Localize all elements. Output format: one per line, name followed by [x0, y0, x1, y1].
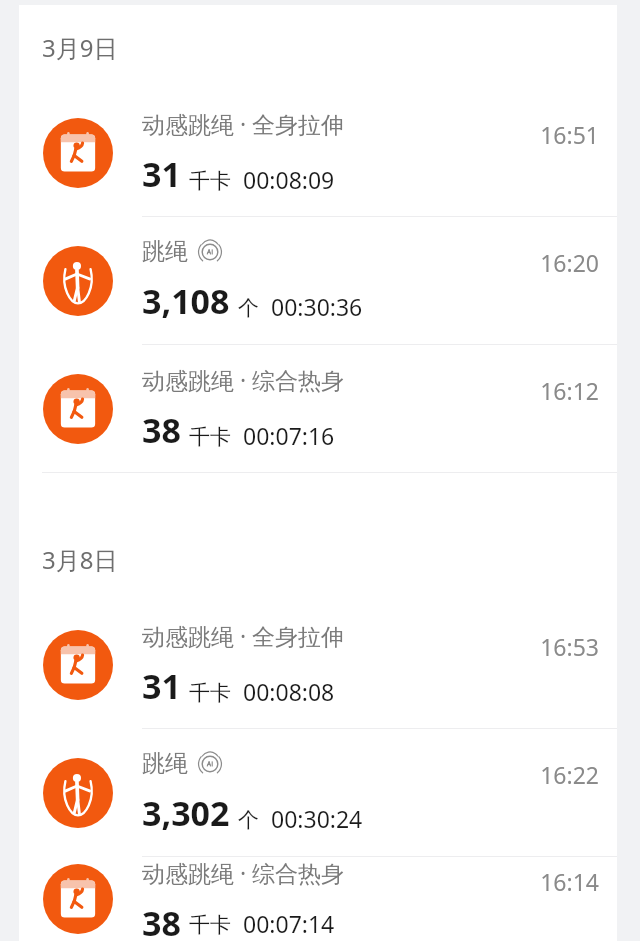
staticText: 动感跳绳 · 全身拉伸 [142, 620, 345, 651]
staticText: 3月8日 [42, 543, 118, 576]
staticText: 个 [238, 807, 259, 833]
staticText: 动感跳绳 · 全身拉伸 [142, 108, 345, 139]
button[interactable]: 动感跳绳 · 全身拉伸 [19, 601, 617, 728]
staticText: 个 [238, 295, 259, 321]
staticText: 16:51 [540, 119, 599, 150]
staticText: 38 [142, 407, 181, 453]
staticText: 跳绳 [142, 237, 188, 266]
button[interactable]: 跳绳 [19, 217, 617, 344]
button[interactable]: 跳绳 [19, 729, 617, 856]
staticText: 16:20 [540, 247, 599, 278]
button[interactable]: 动感跳绳 · 综合热身 [19, 345, 617, 472]
staticText: 动感跳绳 · 综合热身 [142, 857, 345, 888]
staticText: 31 [142, 663, 181, 709]
staticText: 38 [142, 900, 181, 941]
staticText: 动感跳绳 · 综合热身 [142, 364, 345, 395]
staticText: 3月9日 [42, 31, 118, 64]
staticText: 千卡 [189, 912, 231, 938]
staticText: 3,108 [142, 278, 230, 324]
staticText: 千卡 [189, 680, 231, 706]
staticText: 16:12 [540, 375, 599, 406]
staticText: 00:07:16 [243, 420, 335, 451]
staticText: 00:30:24 [271, 803, 363, 834]
staticText: 00:07:14 [243, 908, 335, 939]
staticText: 00:08:09 [243, 164, 335, 195]
staticText: 3,302 [142, 790, 230, 836]
staticText: 跳绳 [142, 749, 188, 778]
staticText: 16:53 [540, 631, 599, 662]
staticText: 16:22 [540, 759, 599, 790]
staticText: 千卡 [189, 168, 231, 194]
staticText: 00:30:36 [271, 291, 363, 322]
staticText: 31 [142, 151, 181, 197]
staticText: 千卡 [189, 424, 231, 450]
staticText: 16:14 [540, 866, 599, 897]
staticText: 00:08:08 [243, 676, 335, 707]
button[interactable]: 动感跳绳 · 全身拉伸 [19, 89, 617, 216]
button[interactable]: 动感跳绳 · 综合热身 [19, 857, 617, 941]
